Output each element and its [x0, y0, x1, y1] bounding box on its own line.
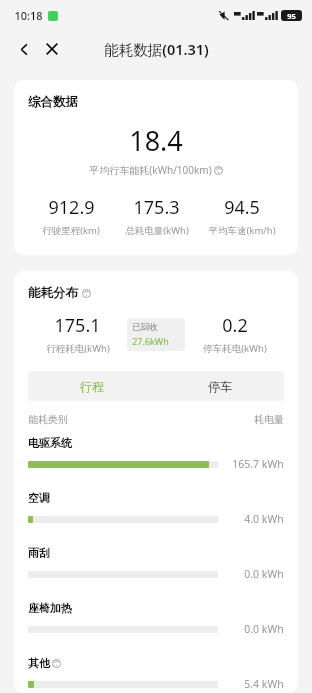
staticText: 已回收	[132, 322, 158, 333]
staticText: 0.0 kWh	[244, 567, 284, 581]
button[interactable]: Back	[10, 35, 38, 63]
staticText: 行驶里程(km)	[42, 224, 100, 237]
staticText: 耗电量	[254, 413, 284, 426]
staticText: 95	[287, 11, 296, 21]
staticText: 其他	[28, 656, 50, 670]
staticText: 912.9	[48, 195, 95, 220]
staticText: 空调	[28, 491, 50, 505]
button[interactable]: Close	[38, 35, 66, 63]
staticText: 综合数据	[28, 94, 78, 110]
staticText: 能耗分布	[28, 285, 78, 301]
staticText: 行程	[80, 379, 104, 394]
staticText: 4.0 kWh	[244, 512, 284, 526]
staticText: 平均车速(km/h)	[208, 224, 276, 237]
staticText: 停车耗电(kWh)	[203, 342, 267, 355]
staticText: 165.7 kWh	[232, 457, 284, 471]
staticText: 总耗电量(kWh)	[125, 224, 189, 237]
staticText: 行程耗电(kWh)	[46, 342, 110, 355]
staticText: 10:18	[14, 8, 43, 23]
staticText: 94.5	[224, 195, 260, 220]
staticText: 座椅加热	[28, 601, 72, 615]
staticText: 5.4 kWh	[244, 677, 284, 691]
staticText: 能耗类别	[28, 413, 68, 426]
staticText: 停车	[208, 379, 232, 394]
staticText: 0.2	[222, 313, 248, 338]
staticText: 电驱系统	[28, 436, 72, 450]
staticText: 175.1	[54, 313, 101, 338]
staticText: 平均行车能耗(kWh/100km)	[89, 163, 212, 177]
button[interactable]: 停车	[156, 371, 284, 401]
staticText: 27.6kWh	[132, 335, 169, 347]
staticText: 18.4	[129, 122, 183, 159]
staticText: 0.0 kWh	[244, 622, 284, 636]
staticText: 175.3	[133, 195, 180, 220]
staticText: 能耗数据(01.31)	[104, 39, 209, 59]
button[interactable]: 行程	[28, 371, 156, 401]
staticText: 雨刮	[28, 546, 50, 560]
